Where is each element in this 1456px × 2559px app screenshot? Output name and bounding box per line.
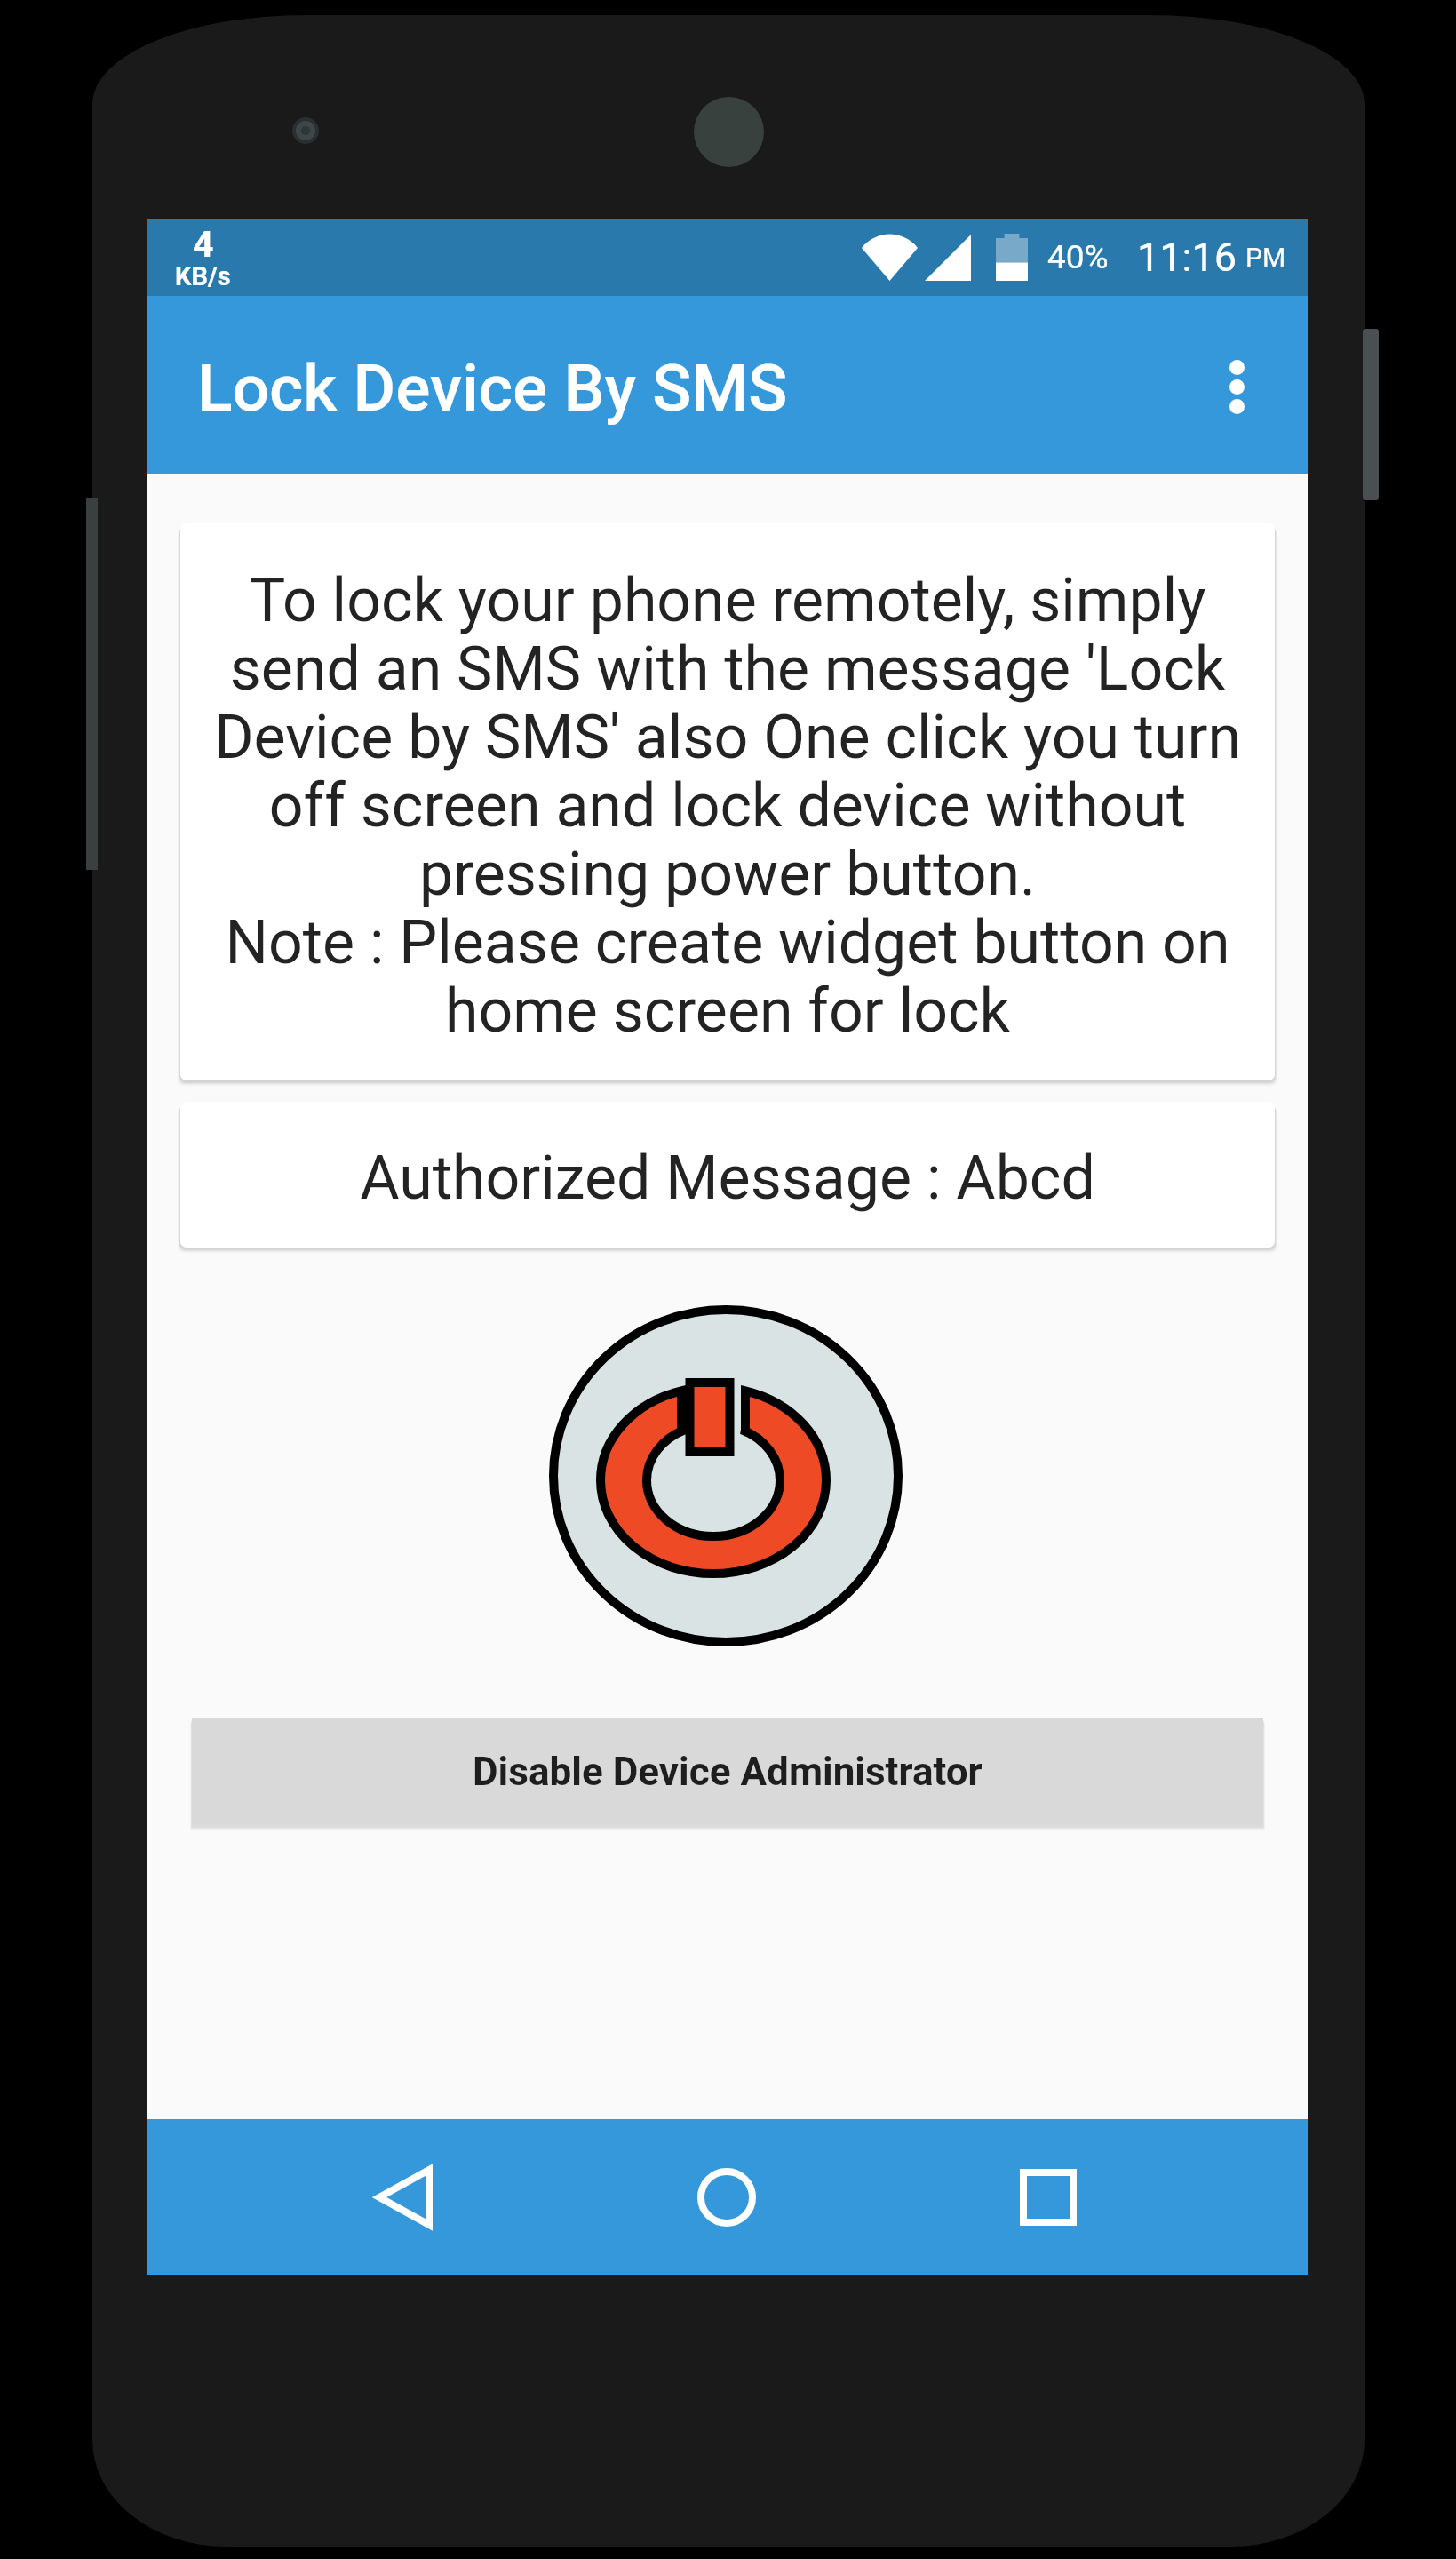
staticText: Authorized Message : Abcd — [360, 1143, 1095, 1214]
button[interactable]: Recent apps — [977, 2119, 1119, 2275]
staticText: 40% — [1047, 238, 1109, 276]
staticText: Lock Device By SMS — [197, 350, 788, 426]
button[interactable]: Home — [656, 2119, 798, 2275]
staticText: To lock your phone remotely, simply send… — [212, 565, 1243, 1047]
button[interactable]: Back — [333, 2119, 475, 2275]
button[interactable]: More options — [1163, 296, 1308, 474]
staticText: KB/s — [175, 261, 231, 291]
button[interactable]: Lock device now — [550, 1301, 905, 1653]
staticText: 11:16 — [1137, 234, 1237, 281]
staticText: Disable Device Administrator — [473, 1749, 983, 1795]
staticText: 4 — [193, 223, 214, 266]
button[interactable]: Disable Device Administrator — [192, 1718, 1263, 1825]
button[interactable]: Authorized Message : Abcd — [180, 1102, 1275, 1248]
staticText: PM — [1245, 242, 1286, 273]
